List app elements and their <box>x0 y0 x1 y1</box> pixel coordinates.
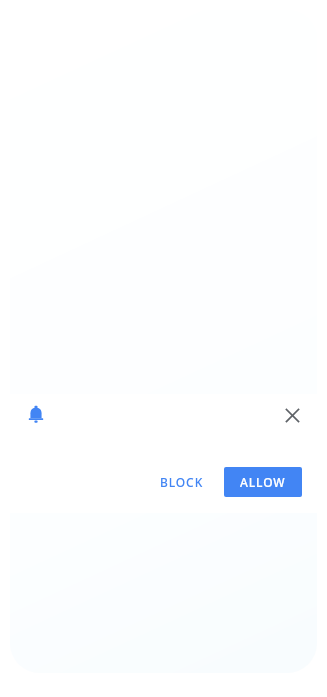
staticText: ALLOW <box>240 474 286 490</box>
button[interactable]: Notifications <box>21 399 51 429</box>
staticText: BLOCK <box>160 474 204 490</box>
button[interactable]: ALLOW <box>224 467 302 497</box>
button[interactable]: Close <box>277 400 307 430</box>
button[interactable]: BLOCK <box>150 467 214 497</box>
